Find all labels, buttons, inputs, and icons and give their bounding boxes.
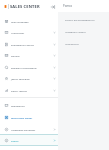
staticText: Pomoc — [11, 139, 19, 142]
staticText: Finanse — [11, 54, 20, 57]
button[interactable]: Pomoc dla sprzedających — [58, 13, 109, 25]
staticText: Pomoc dla sprzedających — [65, 18, 95, 21]
button[interactable]: Insert Sales Center — [0, 111, 58, 123]
staticText: Zamówienia i zwroty — [11, 43, 34, 46]
button[interactable]: Dane i raporty — [0, 84, 58, 96]
button[interactable]: Wyloguj — [49, 3, 56, 10]
button[interactable]: Finanse — [0, 49, 58, 61]
button[interactable]: Pomoc — [62, 2, 74, 10]
staticText: Akademia Allegro — [65, 30, 86, 33]
button[interactable]: Moje sprzedaże — [0, 15, 58, 27]
staticText: Dane i raporty — [11, 89, 28, 92]
button[interactable]: Jakość sprzedaży — [0, 72, 58, 84]
button[interactable]: Pomoc — [0, 134, 58, 146]
button[interactable]: Zamówienia i zwroty — [0, 38, 58, 50]
staticText: Asortyment — [11, 31, 25, 34]
button[interactable]: Reklama i promowanie — [0, 61, 58, 73]
staticText: SALES CENTER — [10, 4, 40, 9]
staticText: Insert Sales Center — [11, 116, 33, 119]
staticText: Moje sprzedaże — [11, 20, 29, 23]
button[interactable]: Asortyment — [0, 26, 58, 38]
staticText: Reklama i promowanie — [11, 66, 37, 69]
button[interactable]: Wiadomości — [0, 99, 58, 111]
staticText: Aktualności — [65, 42, 79, 45]
staticText: Jakość sprzedaży — [11, 77, 30, 80]
button[interactable]: Aktualności — [58, 37, 109, 49]
staticText: Ustawienia sprzedaży — [11, 128, 36, 131]
button[interactable]: Ustawienia sprzedaży — [0, 123, 58, 135]
staticText: Pomoc — [63, 4, 73, 8]
staticText: Wiadomości — [11, 104, 25, 107]
button[interactable]: Akademia Allegro — [58, 25, 109, 37]
